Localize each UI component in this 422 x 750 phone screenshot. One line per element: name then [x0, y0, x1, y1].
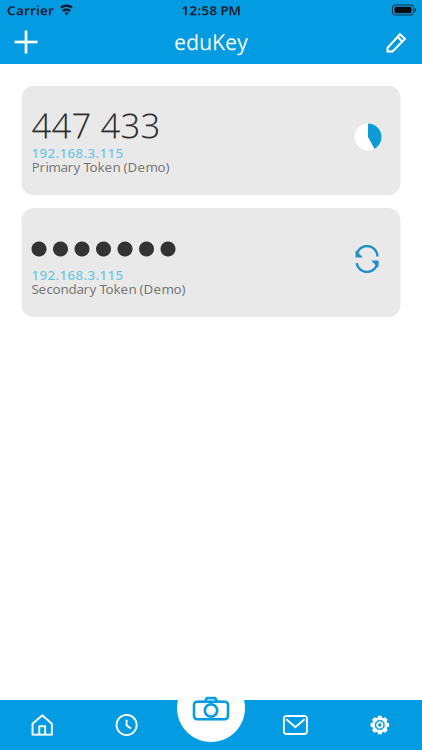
button[interactable]: Messages: [253, 700, 338, 750]
staticText: 192.168.3.115: [31, 266, 123, 284]
button[interactable]: Scan QR code: [177, 674, 245, 742]
button[interactable]: Edit tokens: [374, 20, 420, 64]
staticText: 192.168.3.115: [31, 144, 123, 162]
staticText: eduKey: [174, 28, 248, 56]
staticText: Secondary Token (Demo): [31, 280, 185, 298]
button[interactable]: Add token: [2, 20, 50, 64]
button[interactable]: Settings: [338, 700, 422, 750]
button[interactable]: Home: [0, 700, 84, 750]
button[interactable]: 447 433: [21, 86, 400, 195]
staticText: Carrier: [7, 1, 54, 19]
staticText: Primary Token (Demo): [31, 158, 169, 176]
staticText: 12:58 PM: [181, 1, 240, 19]
button[interactable]: History: [84, 700, 169, 750]
button[interactable]: 192.168.3.115: [21, 208, 400, 317]
staticText: 447 433: [31, 102, 160, 148]
